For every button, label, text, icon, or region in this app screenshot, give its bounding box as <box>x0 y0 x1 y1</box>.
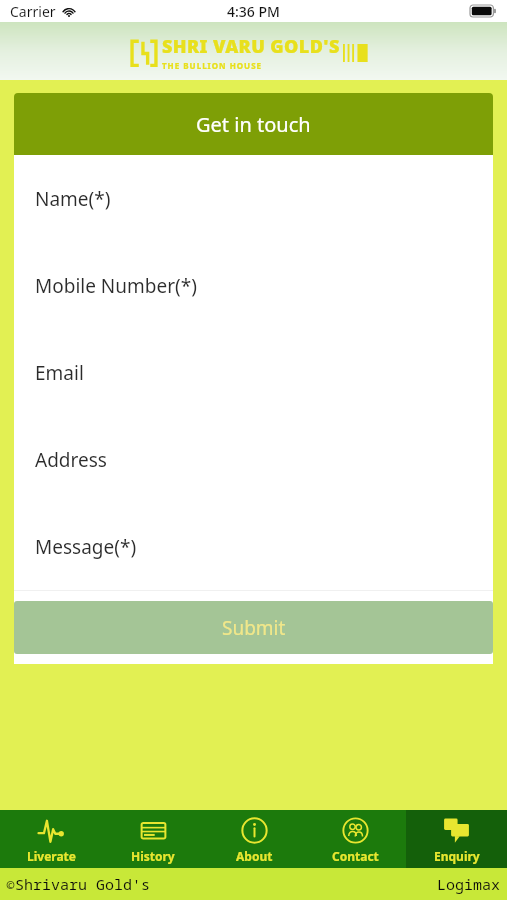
staticText: THE BULLION HOUSE <box>162 60 263 71</box>
staticText: Message(*) <box>35 534 137 560</box>
staticText: Contact <box>332 848 379 864</box>
button[interactable]: Contact <box>305 810 406 868</box>
other: History <box>140 817 167 844</box>
button[interactable]: Address <box>14 416 493 503</box>
staticText: Name(*) <box>35 186 111 212</box>
staticText: 4:36 PM <box>227 2 280 21</box>
button[interactable]: Mobile Number(*) <box>14 242 493 329</box>
staticText: Liverate <box>27 848 76 864</box>
button[interactable]: Liverate <box>0 810 102 868</box>
staticText: SHRI VARU GOLD'S <box>162 34 340 59</box>
staticText: Logimax <box>437 874 501 894</box>
staticText: Carrier <box>10 2 56 21</box>
staticText: Enquiry <box>434 848 480 864</box>
other: Liverate <box>38 817 65 844</box>
staticText: Address <box>35 447 107 473</box>
button[interactable]: About <box>204 810 305 868</box>
other: Contact <box>342 817 369 844</box>
staticText: Get in touch <box>196 111 311 138</box>
button[interactable]: Enquiry <box>406 810 507 868</box>
staticText: Email <box>35 360 84 386</box>
other: About <box>241 817 268 844</box>
staticText: History <box>131 848 175 864</box>
button[interactable]: Submit <box>14 601 493 654</box>
button[interactable]: Message(*) <box>14 503 493 590</box>
button[interactable]: Email <box>14 329 493 416</box>
staticText: ©Shrivaru Gold's <box>6 874 151 894</box>
staticText: Submit <box>222 615 286 641</box>
other: Enquiry <box>443 817 470 844</box>
button[interactable]: History <box>102 810 204 868</box>
button[interactable]: Name(*) <box>14 155 493 242</box>
staticText: Mobile Number(*) <box>35 273 197 299</box>
staticText: About <box>236 848 273 864</box>
